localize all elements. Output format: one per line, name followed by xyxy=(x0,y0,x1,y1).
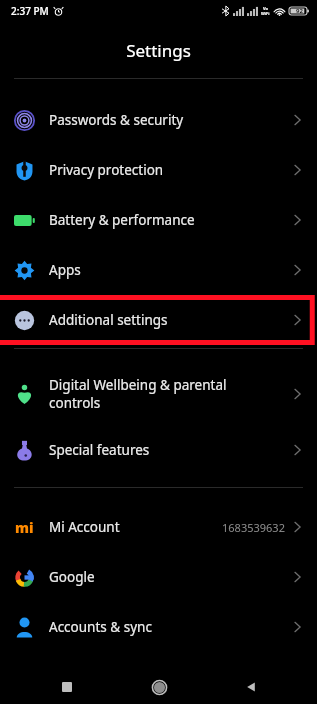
staticText: Google xyxy=(49,568,285,586)
staticText: Special features xyxy=(49,441,285,459)
button[interactable]: Battery & performance xyxy=(0,195,317,245)
staticText: Battery & performance xyxy=(49,211,285,229)
staticText: Apps xyxy=(49,261,285,279)
button[interactable]: Passwords & security xyxy=(0,95,317,145)
staticText: 1683539632 xyxy=(222,520,285,535)
staticText: Mi Account xyxy=(49,518,216,536)
staticText: Digital Wellbeing & parental controls xyxy=(49,376,285,412)
button[interactable]: Home xyxy=(113,670,205,704)
button[interactable]: Recents xyxy=(21,670,113,704)
staticText: Vo xyxy=(263,6,269,11)
staticText: WiFi xyxy=(261,11,270,16)
staticText: Settings xyxy=(126,39,191,62)
staticText: Passwords & security xyxy=(49,111,285,129)
staticText: Privacy protection xyxy=(49,161,285,179)
staticText: 92 xyxy=(296,7,303,15)
staticText: Additional settings xyxy=(49,311,285,329)
button[interactable]: Accounts & sync xyxy=(0,602,317,652)
button[interactable]: Apps xyxy=(0,245,317,295)
button[interactable]: mi xyxy=(0,502,317,552)
button[interactable]: Back xyxy=(205,670,297,704)
button[interactable]: Privacy protection xyxy=(0,145,317,195)
button[interactable]: Google xyxy=(0,552,317,602)
button[interactable]: Additional settings xyxy=(0,295,317,345)
staticText: mi xyxy=(15,518,34,537)
staticText: 2:37 PM xyxy=(11,4,49,18)
staticText: Accounts & sync xyxy=(49,618,285,636)
button[interactable]: Digital Wellbeing & parental controls xyxy=(0,363,317,425)
button[interactable]: Special features xyxy=(0,425,317,475)
